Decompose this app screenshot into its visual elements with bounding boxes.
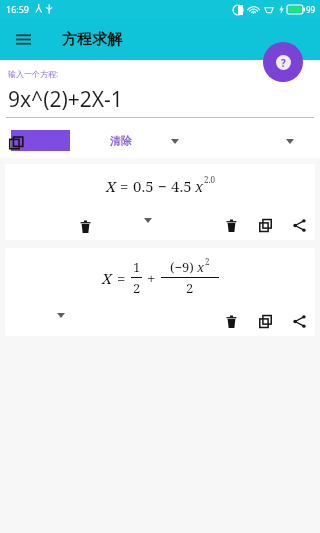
staticText: ?: [281, 56, 286, 70]
staticText: 输入一个方程:: [8, 68, 59, 79]
staticText: (−9): [170, 258, 194, 276]
staticText: 2: [133, 279, 141, 297]
staticText: 方程求解: [62, 30, 122, 49]
staticText: 2: [186, 279, 194, 297]
button[interactable]: Copy: [255, 311, 275, 331]
staticText: 16:59: [6, 3, 30, 15]
staticText: 99: [306, 4, 316, 15]
button[interactable]: Expand: [54, 308, 68, 322]
staticText: 4.5: [171, 176, 192, 196]
button[interactable]: Menu: [8, 24, 38, 54]
button[interactable]: Share: [289, 311, 309, 331]
button[interactable]: 清除: [110, 134, 132, 148]
button[interactable]: Expand: [283, 134, 297, 148]
button[interactable]: Expand: [168, 134, 182, 148]
button[interactable]: Share: [289, 215, 309, 235]
button[interactable]: Help: [263, 42, 303, 82]
staticText: =: [120, 176, 129, 196]
button[interactable]: 9x^(2)+2X-1: [0, 85, 320, 113]
staticText: 2.0: [204, 174, 215, 185]
button[interactable]: Expand: [141, 213, 155, 227]
button[interactable]: Delete: [75, 216, 95, 236]
staticText: −: [158, 176, 167, 196]
staticText: +: [147, 268, 156, 288]
staticText: X: [102, 268, 112, 288]
button[interactable]: Delete: [221, 215, 241, 235]
button[interactable]: X: [5, 164, 315, 240]
staticText: x: [195, 176, 204, 196]
staticText: 0.5: [133, 176, 154, 196]
staticText: X: [106, 176, 116, 196]
staticText: x: [197, 258, 205, 276]
button[interactable]: Delete: [221, 311, 241, 331]
staticText: 1: [133, 258, 141, 276]
button[interactable]: X: [5, 248, 315, 336]
staticText: =: [117, 268, 126, 288]
staticText: 9x^(2)+2X-1: [8, 85, 123, 113]
staticText: 2: [205, 256, 210, 267]
button[interactable]: Copy: [255, 215, 275, 235]
button[interactable]: Copy: [11, 130, 70, 151]
